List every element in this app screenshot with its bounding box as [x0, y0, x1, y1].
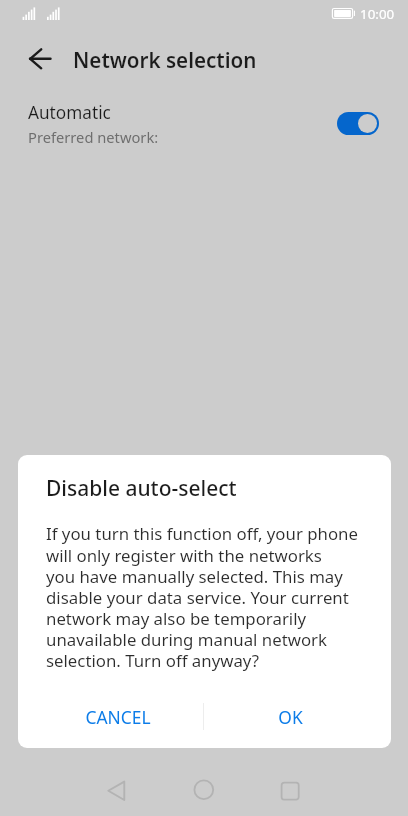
button[interactable]: CANCEL: [31, 693, 204, 741]
staticText: CANCEL: [85, 705, 151, 729]
button[interactable]: Back: [86, 761, 146, 816]
staticText: 10:00: [360, 5, 395, 23]
button[interactable]: Recent apps: [259, 761, 319, 816]
staticText: Disable auto-select: [46, 474, 237, 503]
staticText: Automatic: [28, 101, 111, 124]
button[interactable]: OK: [204, 693, 377, 741]
staticText: If you turn this function off, your phon…: [46, 522, 358, 672]
staticText: Preferred network:: [28, 127, 159, 147]
button[interactable]: Automatic: [0, 0, 408, 156]
button[interactable]: Automatic network selection: [337, 112, 379, 135]
staticText: Network selection: [73, 46, 257, 74]
staticText: OK: [278, 705, 303, 729]
button[interactable]: Navigate up: [17, 40, 55, 78]
button[interactable]: Home: [174, 761, 234, 816]
